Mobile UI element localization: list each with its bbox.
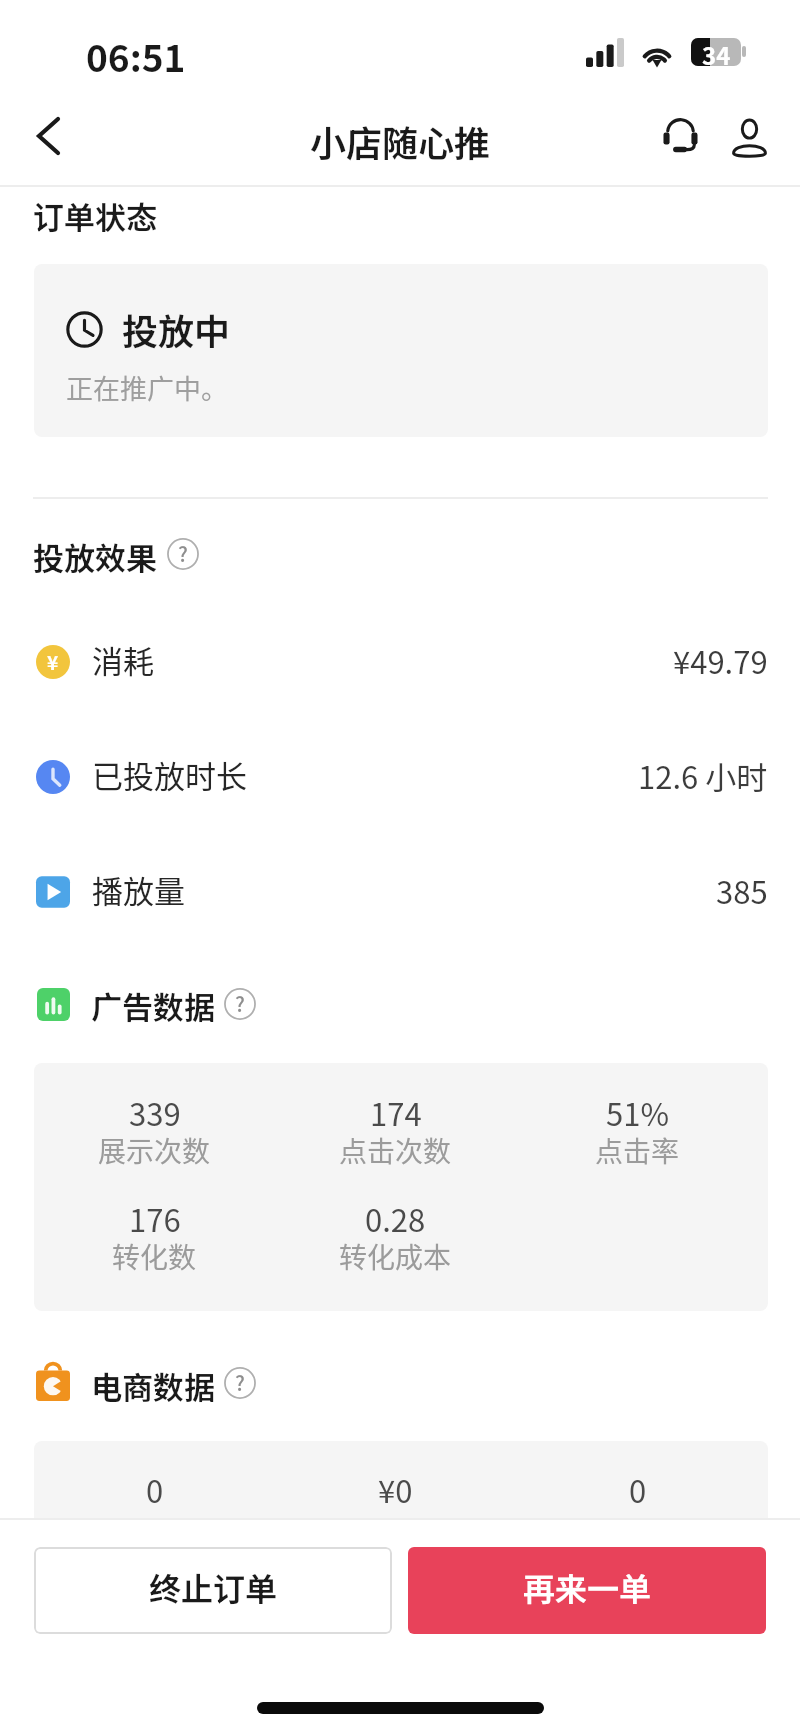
staticText: 0 (629, 1467, 647, 1512)
staticText: ? (235, 1368, 245, 1397)
staticText: 转化数 (112, 1236, 197, 1277)
staticText: 成交人数 (581, 1512, 694, 1553)
staticText: 174 (370, 1090, 422, 1135)
staticText: 0.28 (365, 1196, 426, 1241)
staticText: 176 (129, 1196, 181, 1241)
staticText: 339 (129, 1090, 181, 1135)
button[interactable]: Help (167, 538, 199, 570)
staticText: ¥ (47, 648, 59, 676)
staticText: 订单状态 (33, 193, 157, 238)
staticText: 转化成本 (339, 1236, 452, 1277)
staticText: 电商数据 (91, 1363, 215, 1408)
button[interactable]: 终止订单 (34, 1547, 392, 1634)
staticText: 06:51 (86, 29, 186, 83)
button[interactable]: Back (12, 100, 84, 172)
staticText: ? (178, 539, 188, 568)
staticText: ¥0 (378, 1467, 413, 1512)
staticText: 展示次数 (98, 1130, 211, 1171)
button[interactable]: Help (224, 988, 256, 1020)
staticText: 成交订单数 (84, 1512, 225, 1553)
staticText: 投放效果 (33, 534, 157, 579)
staticText: 已投放时长 (92, 752, 247, 797)
staticText: 成交金额 (339, 1512, 452, 1553)
button[interactable]: 播放量 (0, 834, 800, 949)
button[interactable]: Customer service (646, 101, 714, 169)
staticText: 小店随心推 (310, 115, 491, 167)
staticText: 投放中 (122, 303, 231, 355)
staticText: 播放量 (92, 867, 185, 912)
button[interactable]: Help (224, 1367, 256, 1399)
button[interactable]: Account (715, 104, 783, 172)
staticText: 12.6 小时 (638, 753, 768, 798)
button[interactable]: 再来一单 (408, 1547, 766, 1634)
staticText: 385 (716, 868, 768, 913)
staticText: 点击率 (595, 1130, 680, 1171)
staticText: ? (235, 989, 245, 1018)
staticText: 广告数据 (91, 983, 215, 1028)
staticText: 51% (606, 1090, 669, 1135)
staticText: 点击次数 (339, 1130, 452, 1171)
staticText: 0 (146, 1467, 164, 1512)
staticText: 正在推广中。 (66, 368, 228, 407)
staticText: 34 (702, 38, 731, 65)
staticText: 消耗 (92, 637, 154, 682)
staticText: 终止订单 (149, 1564, 278, 1610)
staticText: ¥49.79 (673, 638, 768, 683)
button[interactable]: ¥ (0, 604, 800, 719)
button[interactable]: 已投放时长 (0, 719, 800, 834)
staticText: 再来一单 (523, 1564, 652, 1610)
